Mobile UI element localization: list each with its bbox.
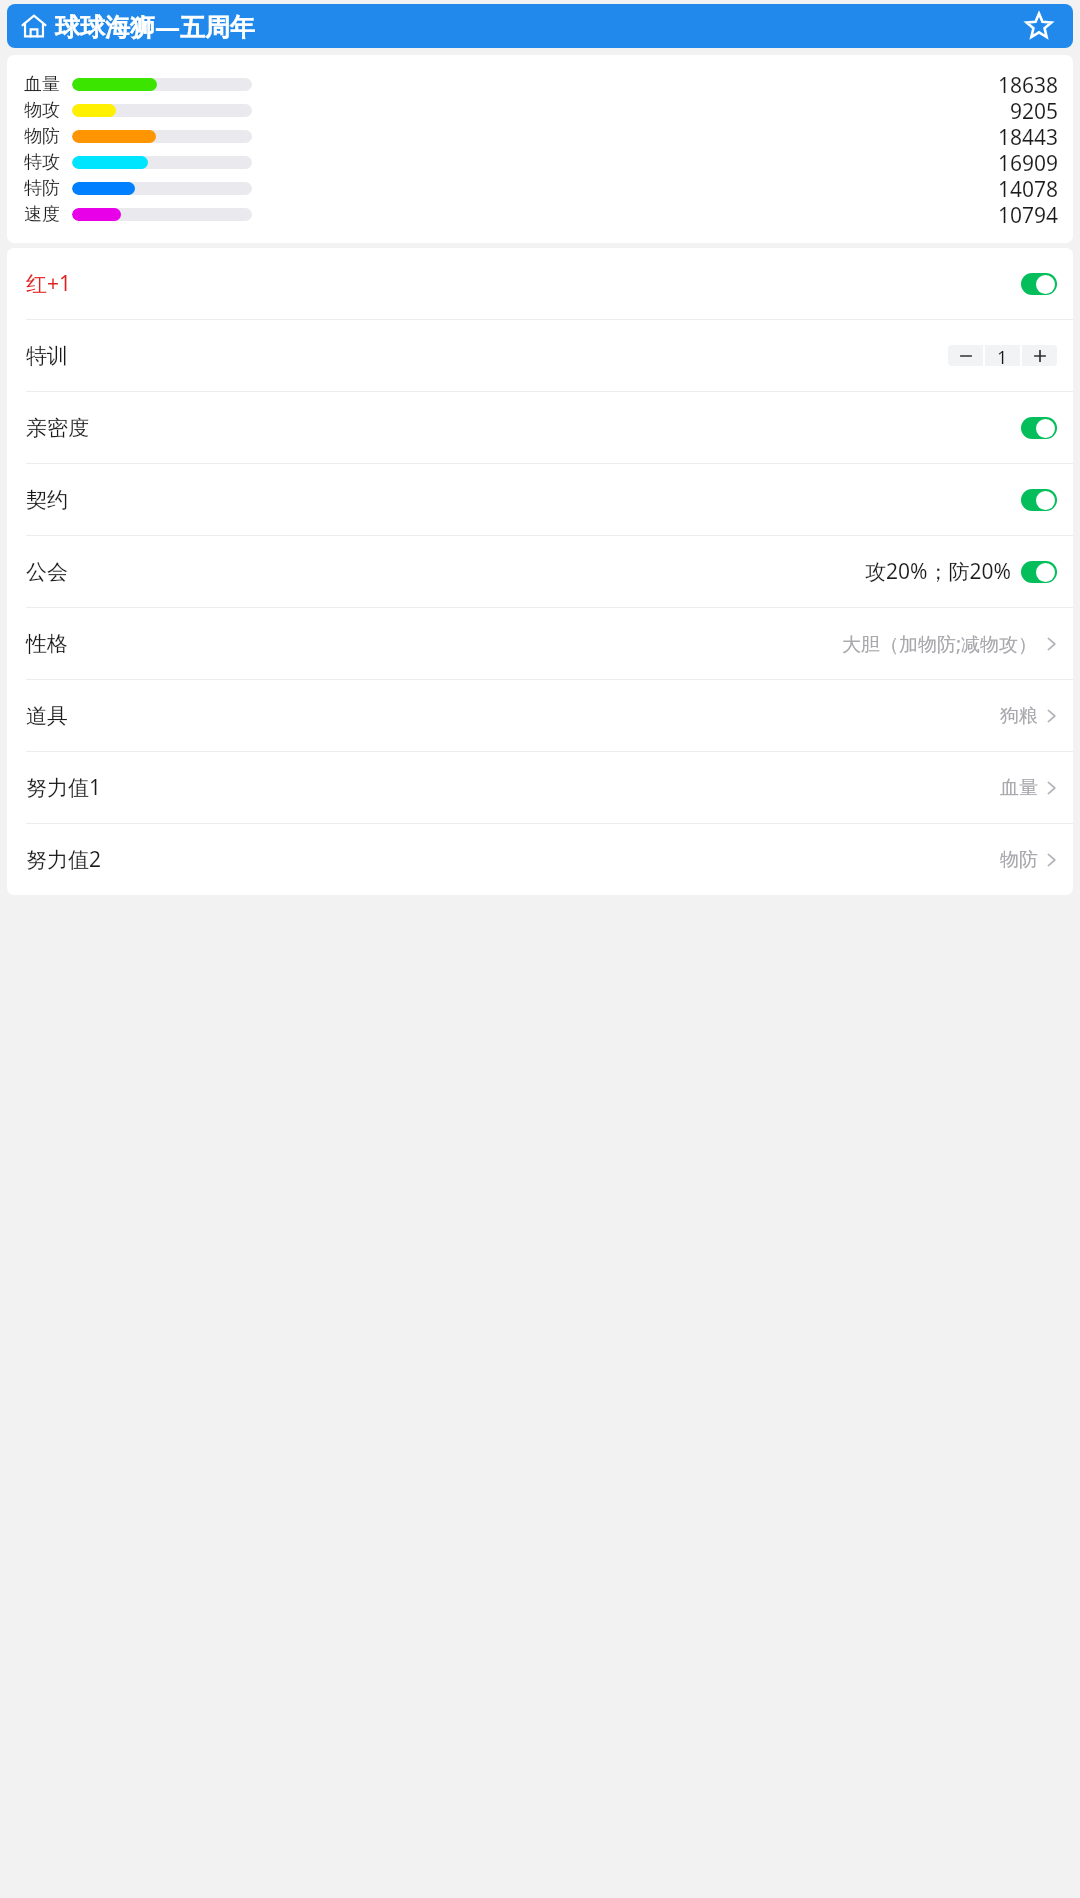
- button[interactable]: 努力值2: [7, 824, 1073, 895]
- staticText: 努力值1: [26, 773, 102, 802]
- staticText: 特训: [26, 343, 68, 369]
- staticText: 物防: [1000, 848, 1038, 872]
- staticText: 9205: [1009, 97, 1058, 123]
- staticText: 14078: [997, 175, 1058, 201]
- button[interactable]: 红+1: [7, 248, 1073, 319]
- button[interactable]: 努力值1: [7, 752, 1073, 823]
- staticText: 10794: [997, 201, 1058, 227]
- staticText: 攻20%；防20%: [865, 557, 1011, 586]
- button[interactable]: Toggle: [1021, 489, 1057, 511]
- button[interactable]: Toggle: [1021, 273, 1057, 295]
- button[interactable]: Decrease: [948, 345, 983, 366]
- staticText: 18443: [997, 123, 1058, 149]
- staticText: 亲密度: [26, 415, 89, 441]
- button[interactable]: Toggle: [1021, 417, 1057, 439]
- staticText: 性格: [26, 631, 68, 657]
- button[interactable]: Increase: [1022, 345, 1057, 366]
- staticText: 血量: [1000, 776, 1038, 800]
- staticText: 血量: [24, 73, 60, 96]
- button[interactable]: Favorite: [1019, 6, 1059, 46]
- staticText: 16909: [997, 149, 1058, 175]
- staticText: 速度: [24, 203, 60, 226]
- staticText: 物攻: [24, 99, 60, 122]
- button[interactable]: 公会: [7, 536, 1073, 607]
- staticText: 努力值2: [26, 845, 102, 874]
- staticText: 公会: [26, 559, 68, 585]
- staticText: 红+1: [26, 269, 72, 298]
- staticText: 18638: [997, 71, 1058, 97]
- button[interactable]: 性格: [7, 608, 1073, 679]
- button[interactable]: 道具: [7, 680, 1073, 751]
- button[interactable]: 1: [985, 345, 1020, 366]
- button[interactable]: 契约: [7, 464, 1073, 535]
- staticText: 狗粮: [1000, 704, 1038, 728]
- staticText: 契约: [26, 487, 68, 513]
- staticText: 特攻: [24, 151, 60, 174]
- staticText: 特防: [24, 177, 60, 200]
- staticText: 物防: [24, 125, 60, 148]
- staticText: 大胆（加物防;减物攻）: [842, 631, 1038, 657]
- staticText: 1: [997, 345, 1008, 366]
- staticText: 球球海狮—五周年: [55, 9, 256, 43]
- button[interactable]: Toggle: [1021, 561, 1057, 583]
- staticText: 道具: [26, 703, 68, 729]
- button[interactable]: Home: [17, 9, 51, 43]
- button[interactable]: 亲密度: [7, 392, 1073, 463]
